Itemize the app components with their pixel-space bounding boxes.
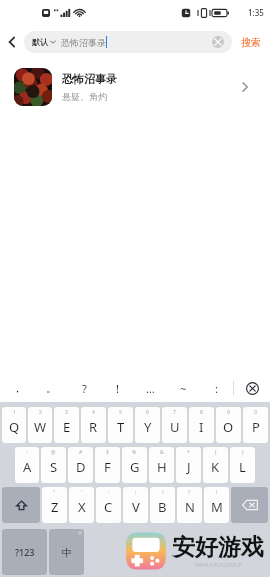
button[interactable]: (: [203, 447, 228, 483]
button[interactable]: ?: [68, 374, 101, 402]
button[interactable]: Open: [234, 76, 256, 98]
staticText: 1: [13, 409, 16, 416]
button[interactable]: :: [200, 374, 233, 402]
staticText: R: [89, 418, 98, 436]
staticText: G: [130, 458, 140, 476]
button[interactable]: %: [122, 447, 147, 483]
button[interactable]: ": [42, 487, 67, 523]
button[interactable]: /: [150, 487, 175, 523]
button[interactable]: 。: [34, 374, 68, 402]
staticText: ": [53, 489, 56, 496]
staticText: @: [51, 449, 56, 456]
staticText: C: [104, 498, 113, 516]
button[interactable]: ;: [123, 487, 148, 523]
staticText: 3: [65, 409, 68, 416]
staticText: /: [162, 489, 164, 496]
staticText: $: [106, 449, 109, 456]
staticText: H: [157, 458, 167, 476]
button[interactable]: :: [96, 487, 121, 523]
button[interactable]: Shift: [2, 487, 40, 523]
staticText: I: [199, 418, 204, 436]
button[interactable]: ~: [167, 374, 200, 402]
button[interactable]: 5: [108, 407, 133, 443]
button[interactable]: *: [176, 447, 201, 483]
staticText: (: [215, 449, 217, 456]
staticText: 中: [62, 546, 72, 559]
button[interactable]: #: [68, 447, 93, 483]
button[interactable]: ': [69, 487, 94, 523]
button[interactable]: ?123: [2, 529, 47, 575]
staticText: 6: [146, 409, 149, 416]
button[interactable]: 8: [189, 407, 214, 443]
staticText: ): [242, 449, 244, 456]
button[interactable]: @: [41, 447, 66, 483]
staticText: 5: [119, 409, 122, 416]
staticText: O: [223, 418, 234, 436]
staticText: 搜索: [241, 36, 261, 49]
staticText: J: [187, 458, 191, 476]
button[interactable]: Backspace: [231, 487, 268, 523]
staticText: ?: [82, 381, 87, 396]
button[interactable]: 默认: [24, 31, 232, 53]
button[interactable]: ，: [0, 374, 34, 402]
staticText: :: [215, 381, 218, 396]
button[interactable]: 7: [162, 407, 187, 443]
button[interactable]: 6: [135, 407, 160, 443]
staticText: …: [146, 381, 155, 396]
button[interactable]: Clear: [212, 36, 224, 48]
button[interactable]: -: [15, 447, 39, 483]
staticText: L: [239, 458, 246, 476]
staticText: Y: [144, 418, 152, 436]
staticText: ': [81, 489, 83, 496]
staticText: P: [252, 418, 260, 436]
staticText: #: [79, 449, 83, 456]
button[interactable]: 恐怖沼事录: [0, 59, 270, 115]
button[interactable]: Back: [0, 25, 24, 59]
staticText: :: [108, 489, 110, 496]
button[interactable]: 3: [54, 407, 79, 443]
staticText: WWW.AHGH.GROUP: [194, 562, 242, 569]
button[interactable]: Close keyboard: [234, 374, 270, 402]
staticText: Z: [51, 498, 59, 516]
button[interactable]: ?: [177, 487, 202, 523]
button[interactable]: ): [230, 447, 255, 483]
button[interactable]: $: [95, 447, 120, 483]
staticText: &: [160, 449, 164, 456]
staticText: K: [211, 458, 220, 476]
staticText: %: [132, 449, 137, 456]
staticText: 默认: [32, 37, 48, 47]
button[interactable]: 4: [81, 407, 106, 443]
staticText: ;: [135, 489, 137, 496]
staticText: ，: [12, 381, 23, 395]
staticText: W: [34, 418, 47, 436]
button[interactable]: 中: [49, 529, 84, 575]
button[interactable]: 0: [243, 407, 268, 443]
staticText: 2: [39, 409, 42, 416]
button[interactable]: &: [149, 447, 174, 483]
staticText: B: [158, 498, 167, 516]
staticText: U: [170, 418, 180, 436]
staticText: E: [63, 418, 71, 436]
staticText: S: [50, 458, 58, 476]
staticText: T: [117, 418, 125, 436]
staticText: 恐怖沼事录: [61, 37, 106, 48]
staticText: N: [185, 498, 195, 516]
button[interactable]: !: [101, 374, 134, 402]
staticText: D: [76, 458, 86, 476]
staticText: 安好游戏: [172, 533, 264, 562]
button[interactable]: 1: [2, 407, 26, 443]
button[interactable]: !: [204, 487, 229, 523]
staticText: M: [211, 498, 223, 516]
staticText: ?123: [15, 546, 35, 558]
staticText: 0: [254, 409, 257, 416]
button[interactable]: 搜索: [232, 25, 270, 59]
staticText: ?: [188, 489, 191, 496]
staticText: 恐怖沼事录: [62, 72, 117, 86]
staticText: *: [187, 449, 190, 456]
staticText: 7: [173, 409, 176, 416]
staticText: 4: [92, 409, 95, 416]
button[interactable]: 9: [216, 407, 241, 443]
staticText: A: [23, 458, 32, 476]
button[interactable]: …: [134, 374, 167, 402]
button[interactable]: 2: [28, 407, 52, 443]
